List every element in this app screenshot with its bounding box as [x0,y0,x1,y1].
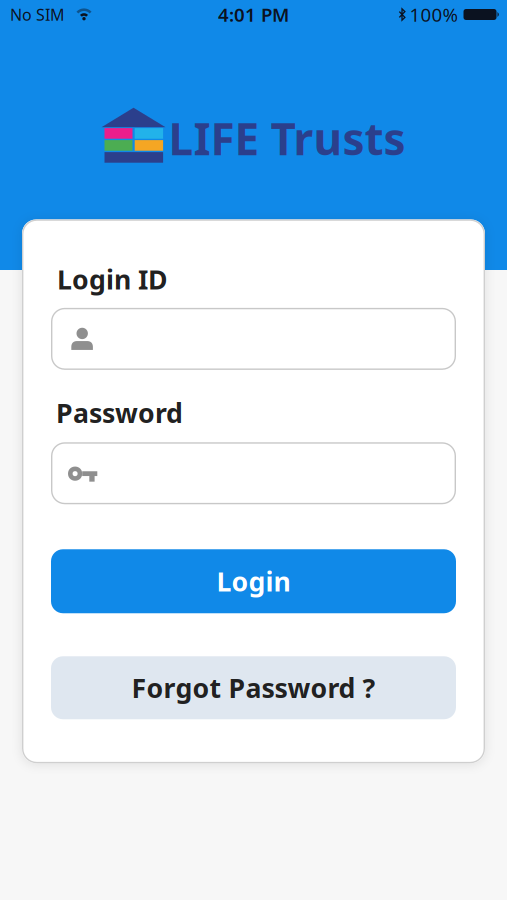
staticText: Forgot Password ? [131,670,375,705]
button[interactable]: Forgot Password ? [51,656,456,719]
staticText: 4:01 PM [218,2,289,27]
button[interactable]: Login [51,549,456,613]
staticText: Password [56,395,183,430]
staticText: Login ID [57,261,168,297]
button[interactable]: Password [51,442,456,504]
staticText: No SIM [10,4,65,25]
staticText: 100% [409,2,458,27]
button[interactable]: Login ID [51,308,456,370]
staticText: Login [216,563,290,599]
staticText: LIFE Trusts [168,109,405,167]
